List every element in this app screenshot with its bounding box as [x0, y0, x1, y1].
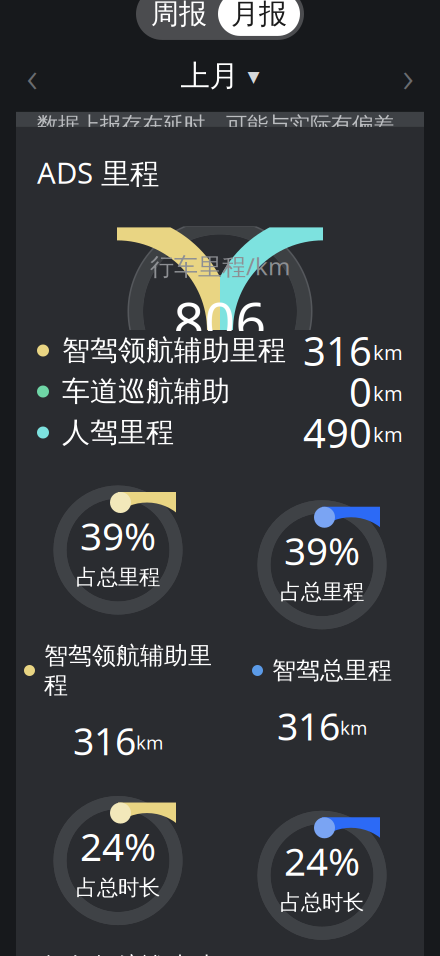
- staticText: 上月: [180, 58, 238, 94]
- staticText: 车道巡航辅助: [62, 374, 230, 409]
- staticText: 490: [303, 406, 372, 459]
- button[interactable]: 月报: [218, 0, 300, 36]
- staticText: km: [340, 715, 367, 740]
- staticText: 316: [303, 324, 372, 377]
- staticText: km: [373, 380, 403, 407]
- staticText: 39%: [284, 524, 360, 576]
- staticText: 占总时长: [280, 889, 364, 916]
- staticText: 智驾总里程: [272, 656, 392, 685]
- staticText: 月报: [231, 0, 287, 31]
- staticText: 806: [173, 285, 266, 356]
- staticText: 316: [73, 716, 136, 766]
- staticText: ‹: [26, 48, 37, 104]
- staticText: 人驾里程: [62, 415, 174, 450]
- staticText: 数据上报存在延时，可能与实际有偏差: [37, 112, 394, 138]
- button[interactable]: 上月: [180, 48, 259, 104]
- staticText: ADS 里程: [37, 153, 159, 192]
- staticText: ▾: [247, 62, 259, 89]
- staticText: km: [373, 421, 403, 448]
- staticText: 智驾领航辅助里程: [62, 333, 286, 368]
- button[interactable]: Previous month: [4, 48, 60, 104]
- staticText: 智驾领航辅助时长: [44, 952, 212, 956]
- staticText: km: [136, 730, 163, 755]
- staticText: 占总时长: [76, 875, 160, 901]
- staticText: 24%: [80, 820, 156, 872]
- staticText: 316: [277, 701, 340, 751]
- staticText: 24%: [284, 835, 360, 886]
- staticText: 0: [349, 365, 372, 418]
- staticText: 占总里程: [76, 564, 160, 590]
- staticText: 周报: [151, 0, 207, 31]
- staticText: 占总里程: [280, 579, 364, 605]
- staticText: ›: [402, 48, 413, 104]
- button[interactable]: Next month: [380, 48, 436, 104]
- staticText: 39%: [80, 510, 156, 561]
- staticText: 智驾领航辅助里程: [44, 641, 212, 700]
- button[interactable]: 周报: [140, 0, 218, 36]
- staticText: km: [373, 339, 403, 366]
- staticText: 行车里程/km: [150, 250, 290, 282]
